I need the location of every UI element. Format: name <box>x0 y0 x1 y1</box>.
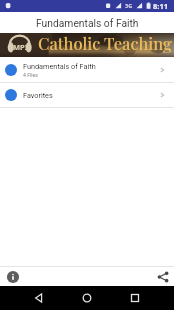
button[interactable]: Info <box>6 270 20 284</box>
button[interactable]: Fundamentals of Faith <box>0 57 174 83</box>
button[interactable]: Recents <box>128 291 142 305</box>
staticText: Favorites <box>23 91 53 100</box>
staticText: MP3 <box>13 42 30 52</box>
button[interactable]: Share <box>156 270 170 284</box>
button[interactable]: Back <box>32 291 46 305</box>
button[interactable]: Home <box>80 291 94 305</box>
button[interactable]: Favorites <box>0 83 174 108</box>
staticText: 4 Files <box>23 72 39 78</box>
staticText: 3G <box>125 2 133 9</box>
staticText: Fundamentals of Faith <box>23 62 96 71</box>
staticText: Catholic Teaching <box>38 32 172 54</box>
staticText: Fundamentals of Faith <box>36 17 139 29</box>
staticText: 8:11 <box>153 1 168 11</box>
